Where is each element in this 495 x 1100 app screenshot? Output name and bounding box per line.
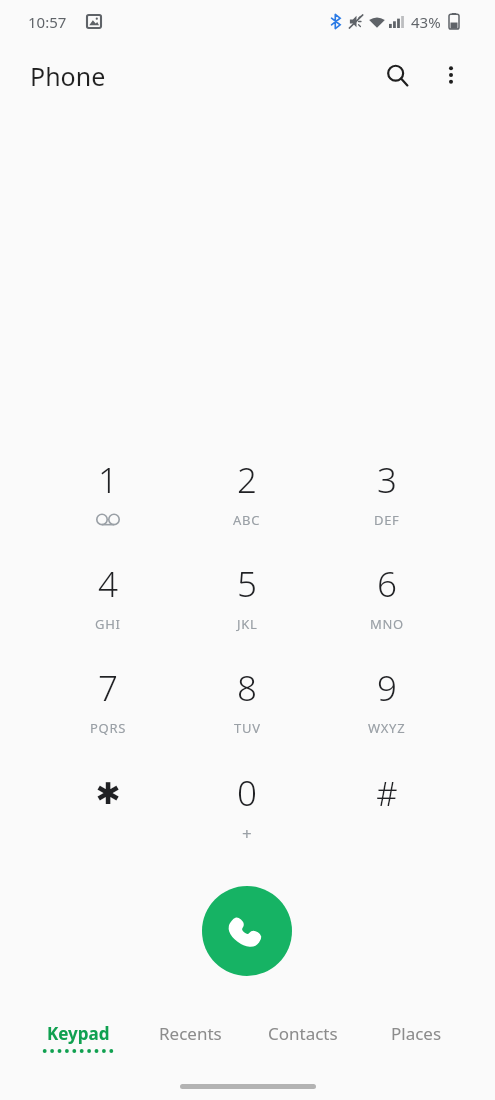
staticText: 7 — [98, 664, 118, 712]
button[interactable]: ✱ — [50, 765, 166, 857]
staticText: PQRS — [90, 719, 127, 737]
button[interactable]: 9 — [329, 660, 445, 752]
staticText: 8 — [237, 664, 257, 712]
button[interactable]: Search — [375, 53, 419, 97]
staticText: 2 — [237, 456, 257, 504]
staticText: ABC — [233, 511, 261, 529]
staticText: 0 — [237, 769, 257, 817]
button[interactable]: More options — [429, 53, 473, 97]
button[interactable]: # — [329, 765, 445, 857]
staticText: 6 — [377, 560, 397, 608]
staticText: 1 — [98, 456, 118, 504]
staticText: 5 — [237, 560, 257, 608]
staticText: ✱ — [95, 776, 121, 811]
button[interactable]: 5 — [189, 556, 305, 648]
button[interactable]: 8 — [189, 660, 305, 752]
staticText: Recents — [159, 1022, 222, 1045]
button[interactable]: 2 — [189, 452, 305, 544]
staticText: JKL — [237, 615, 258, 633]
staticText: 9 — [377, 664, 397, 712]
button[interactable]: Call — [202, 886, 292, 976]
button[interactable]: 7 — [50, 660, 166, 752]
staticText: Places — [391, 1022, 442, 1045]
staticText: GHI — [95, 615, 121, 633]
staticText: + — [242, 822, 252, 845]
staticText: 10:57 — [28, 12, 67, 32]
staticText: Contacts — [268, 1022, 338, 1045]
staticText: 4 — [98, 560, 118, 608]
button[interactable]: 6 — [329, 556, 445, 648]
staticText: 43% — [411, 12, 441, 32]
button[interactable]: Recents — [137, 1012, 243, 1062]
button[interactable]: 3 — [329, 452, 445, 544]
staticText: Phone — [30, 59, 106, 93]
button[interactable]: Places — [367, 1012, 465, 1062]
staticText: 3 — [377, 456, 397, 504]
button[interactable]: 0 — [189, 765, 305, 857]
button[interactable]: 4 — [50, 556, 166, 648]
button[interactable]: Keypad — [27, 1012, 129, 1062]
staticText: TUV — [234, 719, 261, 737]
staticText: Keypad — [47, 1022, 110, 1045]
button[interactable]: Contacts — [246, 1012, 360, 1062]
staticText: WXYZ — [368, 719, 406, 737]
button[interactable]: 1 — [50, 452, 166, 544]
staticText: # — [376, 771, 398, 816]
staticText: MNO — [370, 615, 404, 633]
staticText: DEF — [374, 511, 400, 529]
